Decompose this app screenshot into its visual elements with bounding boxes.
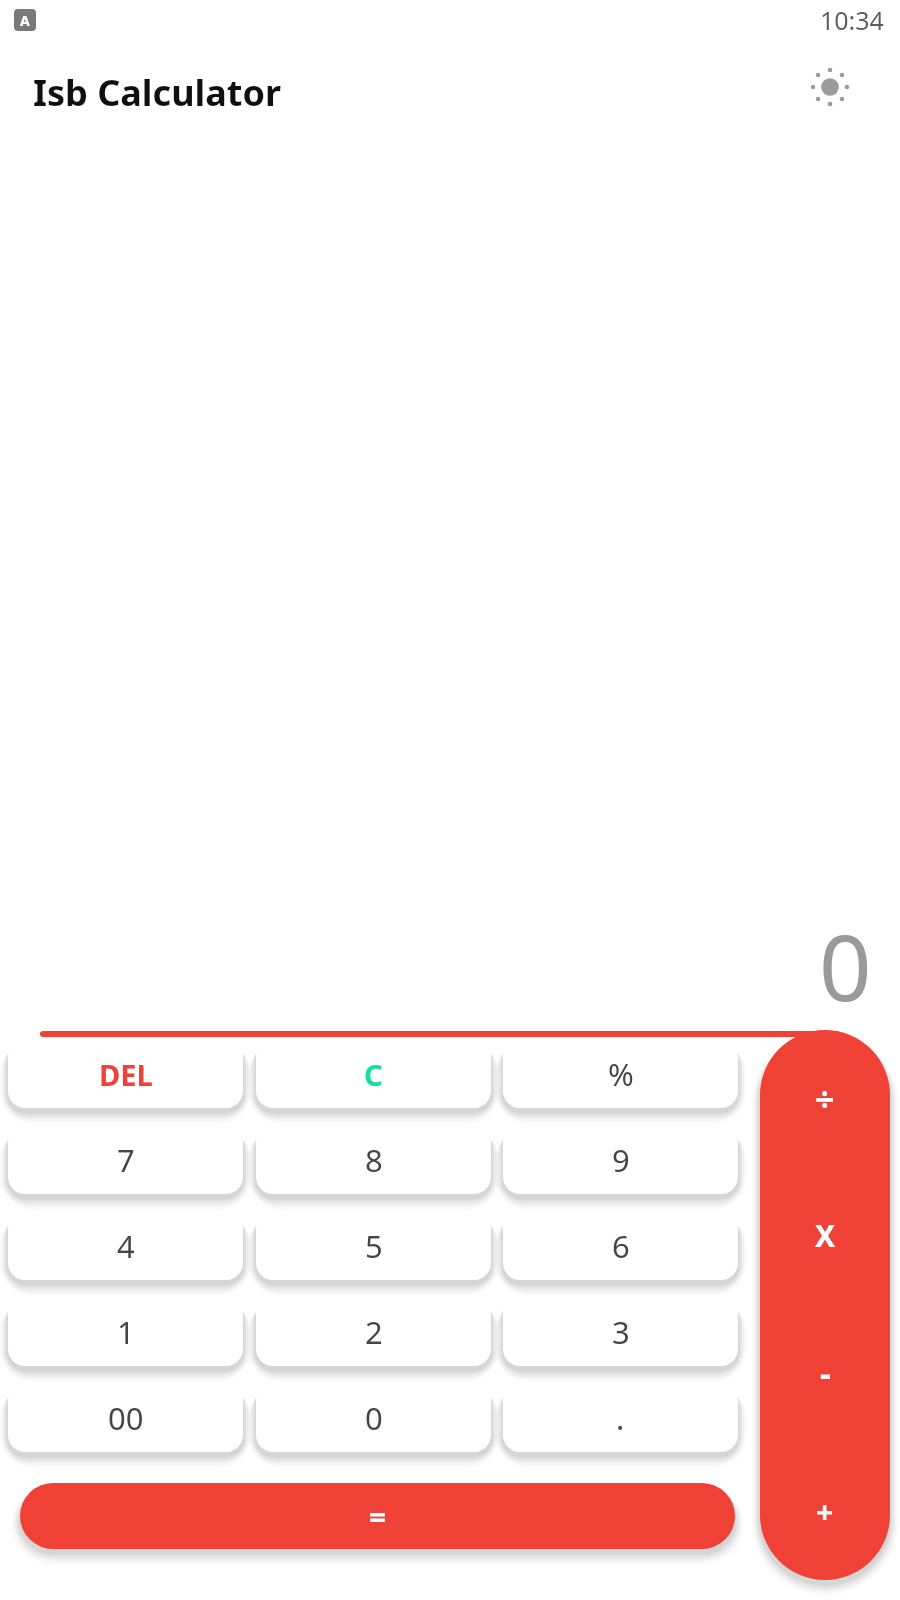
staticText: 2 — [365, 1311, 383, 1353]
staticText: A — [20, 11, 30, 30]
button[interactable]: % — [503, 1040, 738, 1108]
staticText: 00 — [108, 1397, 144, 1439]
staticText: 9 — [612, 1139, 630, 1181]
staticText: X — [815, 1215, 836, 1256]
button[interactable]: 1 — [8, 1298, 243, 1366]
staticText: 4 — [117, 1225, 135, 1267]
button[interactable]: 9 — [503, 1126, 738, 1194]
staticText: Isb Calculator — [33, 68, 282, 117]
button[interactable]: 7 — [8, 1126, 243, 1194]
staticText: C — [364, 1055, 383, 1094]
button[interactable]: Plus — [760, 1442, 890, 1580]
staticText: 0 — [365, 1397, 383, 1439]
staticText: . — [616, 1397, 625, 1439]
button[interactable]: Multiply — [760, 1167, 890, 1304]
staticText: ÷ — [815, 1076, 835, 1122]
staticText: + — [816, 1491, 834, 1532]
button[interactable]: . — [503, 1384, 738, 1452]
button[interactable]: Toggle theme — [798, 55, 862, 119]
staticText: DEL — [99, 1055, 153, 1094]
staticText: = — [369, 1496, 387, 1537]
button[interactable]: 0 — [256, 1384, 491, 1452]
button[interactable]: C — [256, 1040, 491, 1108]
staticText: - — [820, 1350, 831, 1396]
staticText: 10:34 — [820, 3, 884, 37]
staticText: 3 — [612, 1311, 630, 1353]
button[interactable]: 6 — [503, 1212, 738, 1280]
button[interactable]: Minus — [760, 1304, 890, 1442]
staticText: % — [608, 1053, 634, 1095]
button[interactable]: Divide — [760, 1030, 890, 1167]
button[interactable]: 00 — [8, 1384, 243, 1452]
button[interactable]: 4 — [8, 1212, 243, 1280]
staticText: 5 — [365, 1225, 383, 1267]
button[interactable]: = — [20, 1483, 735, 1549]
button[interactable]: 2 — [256, 1298, 491, 1366]
staticText: 6 — [612, 1225, 630, 1267]
staticText: 8 — [365, 1139, 383, 1181]
button[interactable]: 3 — [503, 1298, 738, 1366]
staticText: 1 — [117, 1311, 135, 1353]
button[interactable]: 8 — [256, 1126, 491, 1194]
button[interactable]: DEL — [8, 1040, 243, 1108]
staticText: 7 — [117, 1139, 135, 1181]
staticText: 0 — [819, 903, 872, 1028]
button[interactable]: 5 — [256, 1212, 491, 1280]
